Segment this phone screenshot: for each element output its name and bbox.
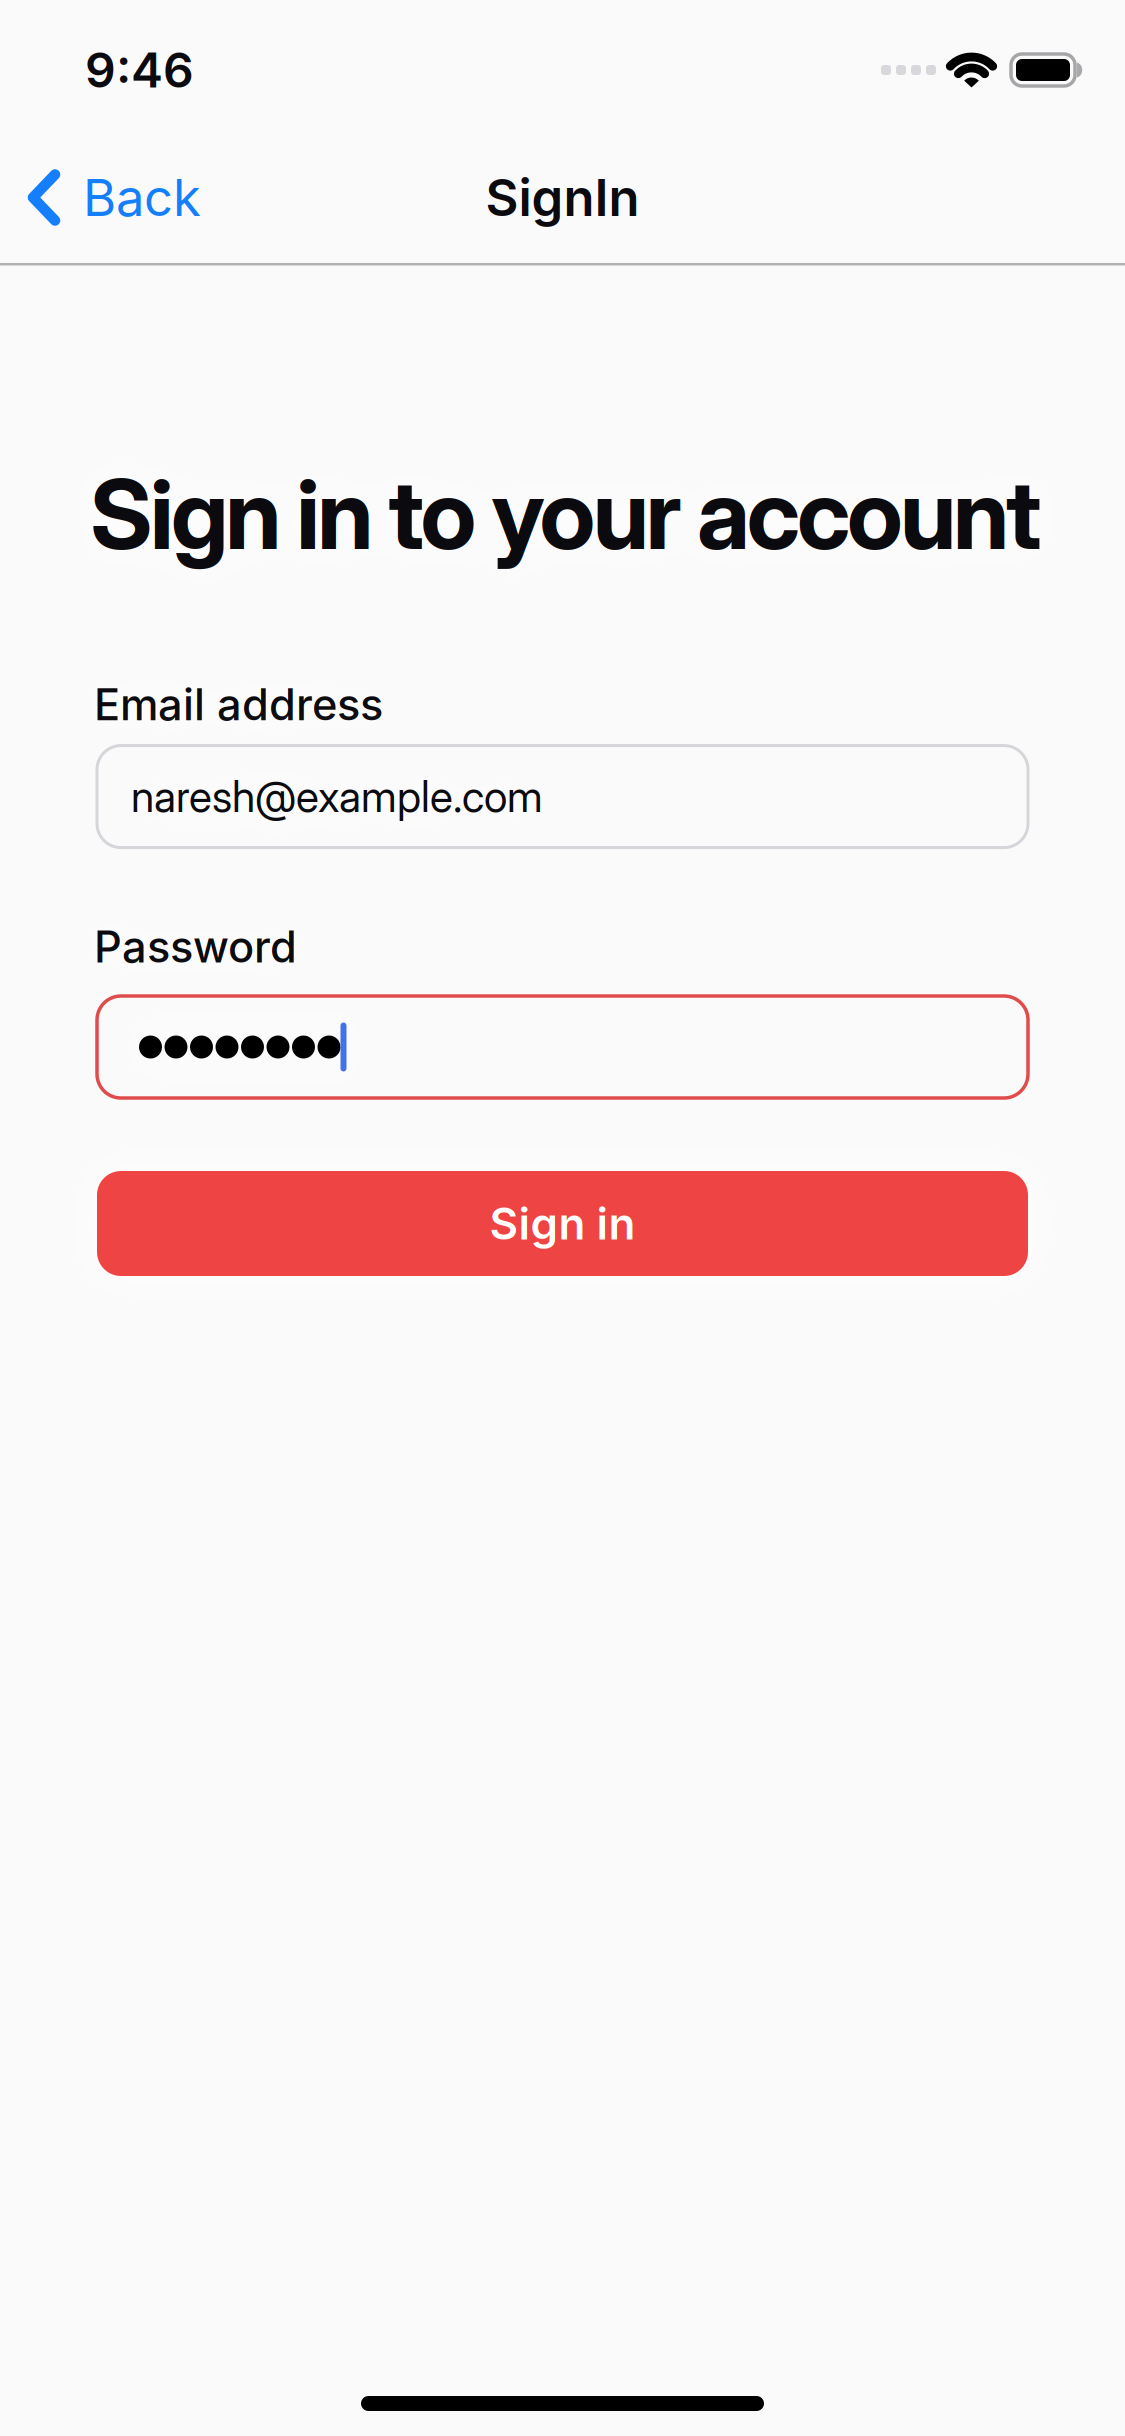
staticText: Sign in	[489, 1198, 635, 1249]
textField[interactable]: naresh@example.com	[97, 746, 1028, 848]
staticText: Password	[94, 921, 297, 973]
staticText: naresh@example.com	[131, 771, 543, 822]
staticText: Back	[83, 168, 201, 227]
staticText: Email address	[94, 678, 383, 731]
staticText: SignIn	[485, 168, 639, 227]
button[interactable]: Sign in	[97, 1171, 1028, 1276]
button[interactable]: Back	[27, 168, 201, 227]
staticText: 9:46	[85, 42, 194, 98]
secureTextField[interactable]: ••••••••	[97, 996, 1028, 1098]
staticText: Sign in to your account	[90, 456, 1041, 572]
